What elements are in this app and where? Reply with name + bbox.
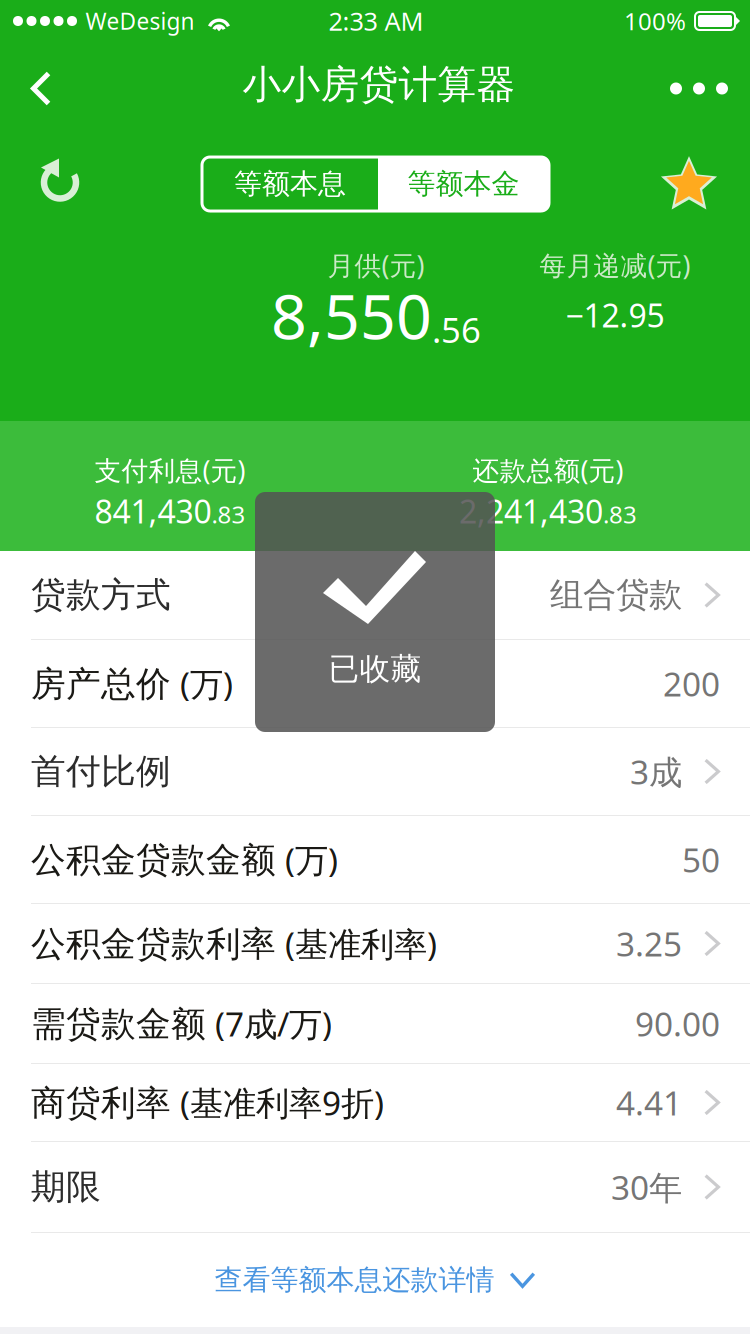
button[interactable]: 查看等额本息还款详情 [0,1233,750,1327]
staticText: 100% [624,5,686,37]
staticText: WeDesign [85,6,194,36]
staticText: 月供(元) [327,247,424,283]
staticText: 支付利息(元) [94,452,245,488]
staticText: 期限 [31,1166,101,1208]
staticText: −12.95 [565,294,664,336]
staticText: 841,430 [94,490,211,532]
staticText: 还款总额(元) [472,452,623,488]
staticText: 2,241,430 [459,490,603,532]
button[interactable]: 等额本息 [202,157,378,211]
button[interactable]: Favorite [641,135,737,228]
staticText: .56 [432,307,481,353]
button[interactable]: Reset [12,135,108,228]
button[interactable]: 首付比例 [0,728,750,816]
staticText: 2:33 AM [328,4,423,38]
staticText: 公积金贷款利率 (基准利率) [31,921,437,966]
staticText: 查看等额本息还款详情 [214,1263,494,1297]
staticText: 3.25 [616,921,682,966]
staticText: 贷款方式 [31,574,171,616]
staticText: 商贷利率 (基准利率9折) [31,1080,384,1125]
button[interactable]: 贷款方式 [0,551,750,640]
staticText: 每月递减(元) [539,247,690,283]
staticText: 等额本金 [407,167,519,201]
staticText: 200 [663,661,720,706]
staticText: 等额本息 [234,167,346,201]
staticText: .83 [211,498,245,530]
staticText: 房产总价 (万) [31,661,233,706]
staticText: 8,550 [271,273,432,357]
staticText: 首付比例 [31,750,171,793]
staticText: 50 [682,837,720,882]
staticText: 组合贷款 [550,574,682,615]
button[interactable]: 房产总价 (万) [0,640,750,728]
button[interactable]: More options [648,42,750,135]
button[interactable]: 公积金贷款利率 (基准利率) [0,904,750,984]
staticText: .83 [603,498,637,530]
staticText: 4.41 [616,1080,682,1125]
button[interactable]: 等额本金 [378,157,549,211]
staticText: 3成 [630,749,682,794]
staticText: 需贷款金额 (7成/万) [31,1001,332,1046]
staticText: 30年 [611,1165,682,1209]
button[interactable]: 需贷款金额 (7成/万) [0,984,750,1064]
staticText: 公积金贷款金额 (万) [31,837,338,882]
button[interactable]: 公积金贷款金额 (万) [0,816,750,904]
staticText: 已收藏 [328,650,421,688]
staticText: 小小房贷计算器 [242,61,515,108]
button[interactable]: 商贷利率 (基准利率9折) [0,1064,750,1142]
button[interactable]: 期限 [0,1142,750,1233]
staticText: 90.00 [635,1001,720,1046]
button[interactable]: Back [0,42,82,135]
